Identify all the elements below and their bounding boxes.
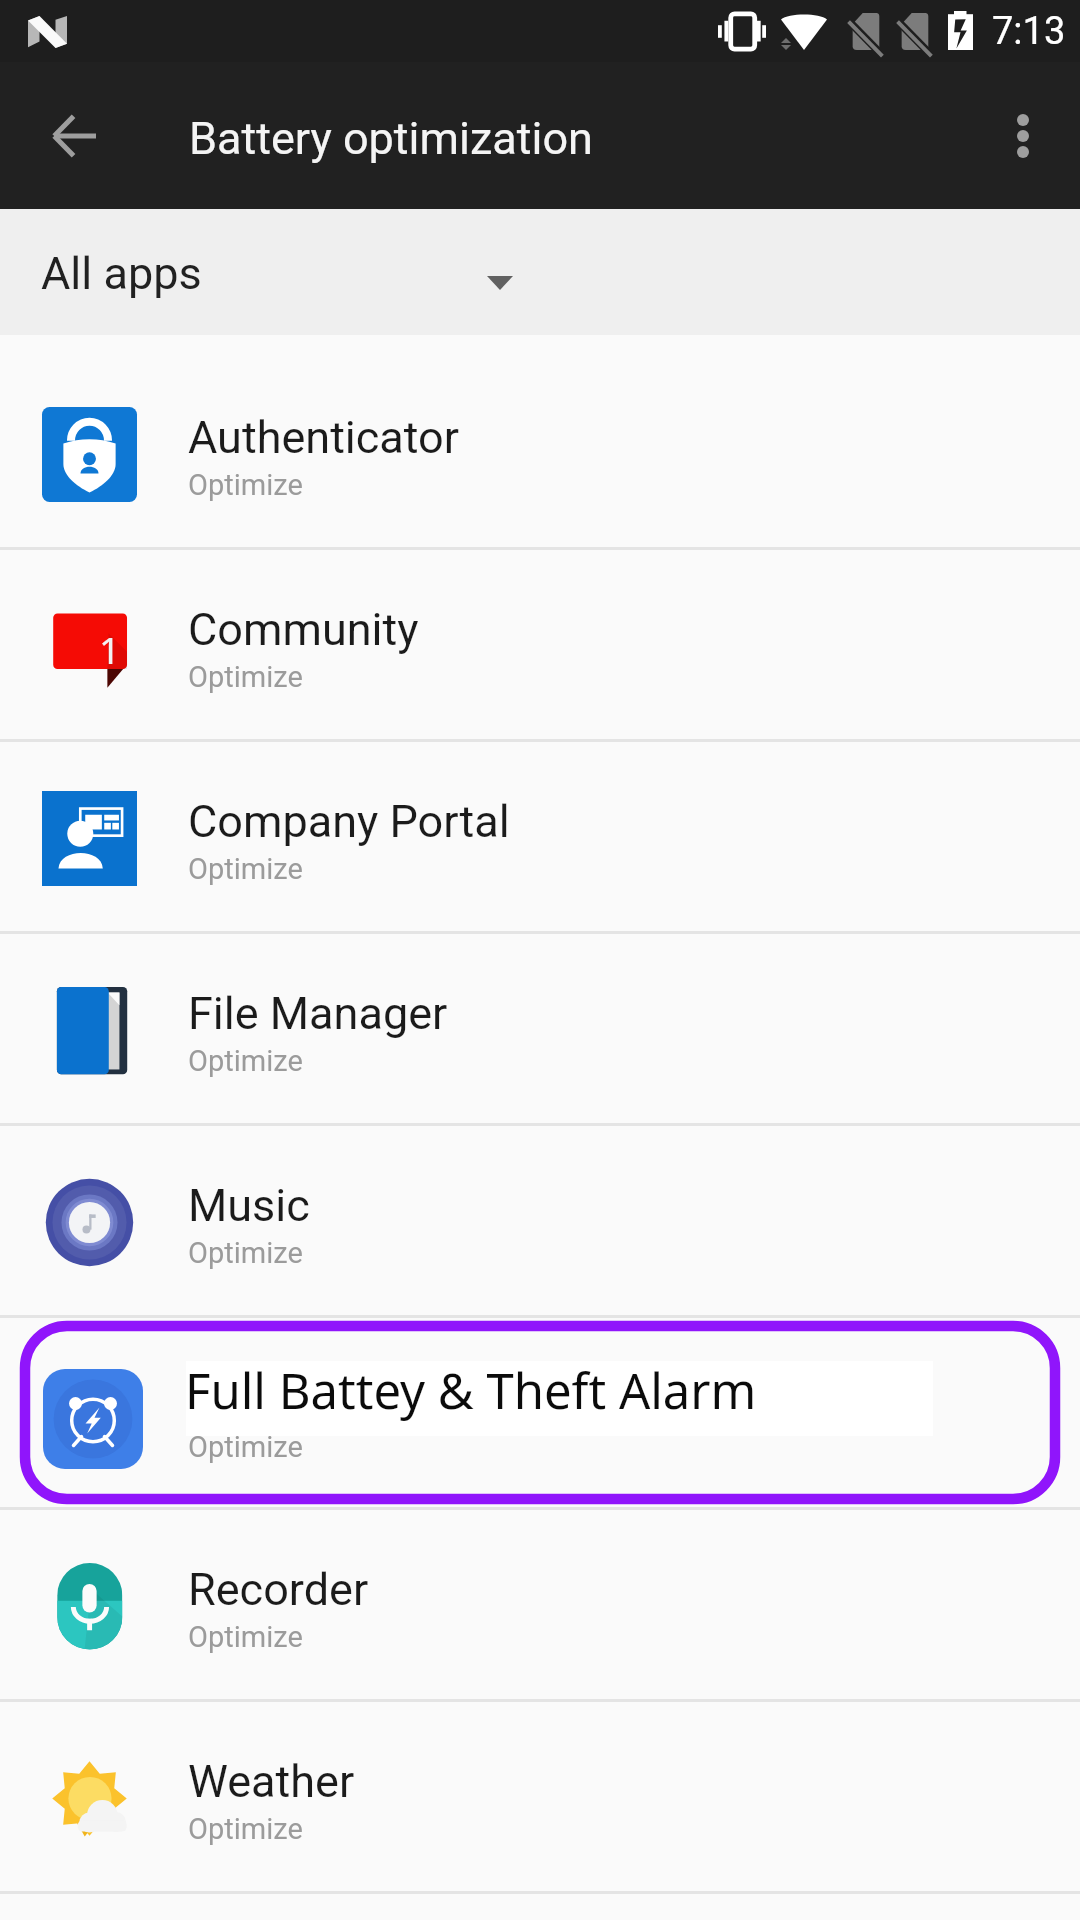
staticText: Optimize — [188, 468, 303, 502]
staticText: Battery optimization — [189, 112, 593, 165]
staticText: Music — [188, 1179, 310, 1232]
button[interactable]: 1 — [0, 550, 1080, 739]
button[interactable]: File Manager — [0, 934, 1080, 1123]
staticText: Optimize — [188, 1236, 303, 1270]
button[interactable]: All apps — [0, 209, 1080, 335]
button[interactable]: Recorder — [0, 1510, 1080, 1699]
button[interactable]: Company Portal — [0, 742, 1080, 931]
button[interactable]: Navigate up — [26, 88, 122, 184]
staticText: File Manager — [188, 987, 448, 1040]
staticText: All apps — [41, 247, 202, 300]
staticText: Recorder — [188, 1563, 369, 1616]
staticText: 7:13 — [992, 9, 1066, 54]
staticText: Full Battey & Theft Alarm — [185, 1357, 757, 1424]
button[interactable]: Authenticator — [0, 358, 1080, 547]
staticText: 1 — [99, 624, 121, 674]
staticText: Community — [188, 603, 419, 656]
button[interactable]: Music — [0, 1126, 1080, 1315]
staticText: Optimize — [188, 1044, 303, 1078]
staticText: Company Portal — [188, 795, 510, 848]
staticText: Optimize — [188, 1812, 303, 1846]
button[interactable]: More options — [975, 88, 1071, 184]
staticText: Weather — [188, 1755, 355, 1808]
button[interactable]: Full Battey & Theft Alarm — [0, 1318, 1080, 1507]
staticText: Optimize — [188, 852, 303, 886]
staticText: Optimize — [188, 1430, 303, 1464]
staticText: Optimize — [188, 660, 303, 694]
staticText: Optimize — [188, 1620, 303, 1654]
staticText: Authenticator — [188, 411, 460, 464]
button[interactable]: Weather — [0, 1702, 1080, 1891]
